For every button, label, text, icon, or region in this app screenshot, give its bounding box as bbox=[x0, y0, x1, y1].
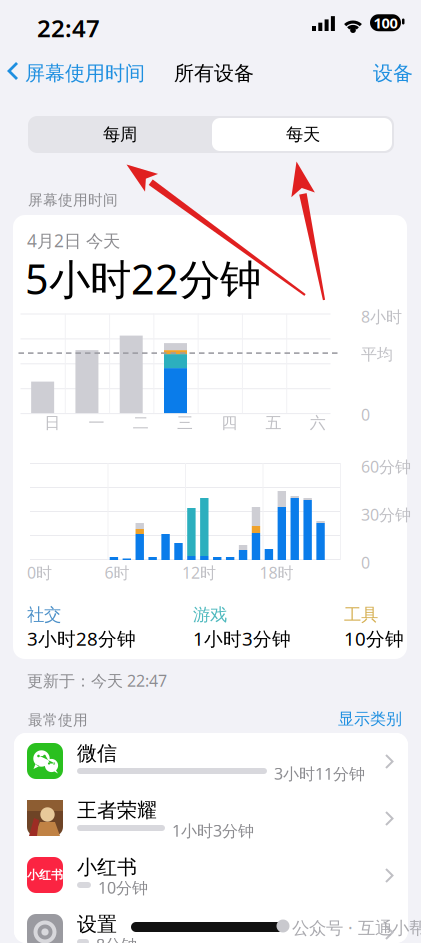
staticText: 微信 bbox=[77, 741, 117, 766]
button[interactable]: 每天 bbox=[212, 116, 394, 153]
staticText: 小红书 bbox=[77, 855, 137, 880]
staticText: 3小时11分钟 bbox=[274, 763, 365, 784]
staticText: 四 bbox=[221, 413, 237, 433]
staticText: 4月2日 今天 bbox=[27, 229, 120, 252]
button[interactable]: 工具 bbox=[344, 604, 421, 650]
button[interactable]: 游戏 bbox=[193, 604, 323, 650]
staticText: 8分钟 bbox=[96, 934, 137, 943]
staticText: 日 bbox=[44, 413, 60, 433]
staticText: 平均 bbox=[361, 344, 393, 364]
staticText: 王者荣耀 bbox=[77, 798, 157, 823]
staticText: 二 bbox=[133, 413, 149, 433]
staticText: 1小时3分钟 bbox=[193, 626, 291, 651]
button[interactable]: 王者荣耀 bbox=[14, 790, 408, 847]
button[interactable]: 微信 bbox=[14, 733, 408, 790]
staticText: 小红书 bbox=[27, 868, 63, 882]
button[interactable]: 设置 bbox=[14, 904, 408, 943]
staticText: 8小时 bbox=[361, 306, 402, 327]
staticText: 60分钟 bbox=[361, 456, 411, 477]
staticText: 0 bbox=[361, 404, 370, 425]
button[interactable]: 每周 bbox=[28, 116, 212, 153]
staticText: 0 bbox=[361, 552, 370, 573]
staticText: 6时 bbox=[104, 562, 129, 583]
staticText: 更新于：今天 22:47 bbox=[27, 670, 167, 691]
staticText: 五 bbox=[266, 413, 282, 433]
staticText: 每周 bbox=[103, 124, 137, 145]
staticText: 社交 bbox=[27, 604, 61, 625]
button[interactable]: 屏幕使用时间 bbox=[0, 52, 152, 90]
staticText: 18时 bbox=[259, 562, 293, 583]
staticText: 游戏 bbox=[193, 604, 227, 625]
staticText: 100 bbox=[373, 13, 397, 32]
staticText: 设备 bbox=[373, 61, 413, 86]
staticText: 每天 bbox=[286, 124, 320, 145]
staticText: 0时 bbox=[27, 562, 52, 583]
button[interactable]: 小红书 bbox=[14, 847, 408, 904]
button[interactable]: 显示类别 bbox=[338, 708, 402, 730]
staticText: 1小时3分钟 bbox=[172, 820, 254, 841]
staticText: 22:47 bbox=[37, 12, 100, 44]
staticText: 30分钟 bbox=[361, 504, 411, 525]
staticText: 10分钟 bbox=[344, 626, 404, 651]
staticText: 12时 bbox=[182, 562, 216, 583]
staticText: 公众号 · 互通小帮手 bbox=[292, 916, 421, 939]
staticText: 最常使用 bbox=[28, 711, 88, 729]
button[interactable]: 社交 bbox=[27, 604, 157, 650]
staticText: 三 bbox=[177, 413, 193, 433]
staticText: 工具 bbox=[344, 604, 378, 625]
staticText: 屏幕使用时间 bbox=[25, 61, 145, 86]
staticText: 3小时28分钟 bbox=[27, 626, 136, 651]
staticText: 六 bbox=[310, 413, 326, 433]
staticText: 10分钟 bbox=[98, 877, 148, 898]
staticText: 一 bbox=[88, 413, 104, 433]
staticText: 设置 bbox=[77, 912, 117, 937]
staticText: 屏幕使用时间 bbox=[28, 191, 118, 209]
staticText: 所有设备 bbox=[174, 61, 254, 86]
staticText: 显示类别 bbox=[338, 709, 402, 729]
staticText: 5小时22分钟 bbox=[25, 251, 261, 306]
button[interactable]: 设备 bbox=[357, 52, 419, 90]
